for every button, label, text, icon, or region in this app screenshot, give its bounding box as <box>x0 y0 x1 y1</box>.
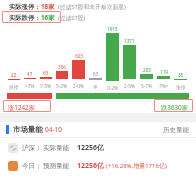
staticText: 203 <box>143 67 151 73</box>
staticText: 1371 <box>124 38 135 44</box>
staticText: 7-5% <box>40 83 52 90</box>
staticText: 119 <box>160 69 168 75</box>
staticText: 历史量能 <box>163 126 189 134</box>
staticText: 涨停 <box>176 84 186 90</box>
staticText: 实际量能 <box>43 144 69 152</box>
staticText: 12256亿 <box>77 143 105 153</box>
staticText: 35 <box>178 72 184 78</box>
staticText: 预测量能 <box>43 162 69 170</box>
staticText: (过滤ST股和未开板次新股) <box>58 3 126 11</box>
button[interactable]: 历史量能 <box>163 126 189 134</box>
staticText: 跌停 <box>9 84 19 90</box>
staticText: 实际跌停： <box>9 14 41 22</box>
staticText: 今日 <box>22 162 35 170</box>
staticText: 沪深 <box>22 144 35 152</box>
staticText: 2-5% <box>124 83 136 90</box>
staticText: | <box>37 162 41 170</box>
staticText: 实际涨停： <box>9 3 41 11</box>
staticText: (过滤ST股) <box>58 14 86 22</box>
staticText: 跌3630家 <box>161 103 189 112</box>
button[interactable]: 市场量能 <box>13 125 62 134</box>
staticText: 603 <box>75 53 83 59</box>
staticText: (+16.28%,增量1716亿) <box>106 162 167 170</box>
staticText: | <box>37 144 41 152</box>
staticText: 16家 <box>41 13 55 22</box>
staticText: 0-2% <box>107 85 119 90</box>
staticText: 平 <box>93 84 98 90</box>
staticText: 12256亿 <box>77 161 105 171</box>
staticText: 306 <box>58 64 66 70</box>
staticText: >7% <box>25 83 35 90</box>
staticText: 2-0% <box>73 83 85 90</box>
staticText: 涨1242家 <box>8 103 36 112</box>
staticText: 5-2% <box>56 83 68 90</box>
staticText: 7%< <box>159 83 169 90</box>
staticText: 63 <box>93 71 99 77</box>
staticText: 18家 <box>41 2 55 11</box>
button[interactable]: 今日 <box>0 160 196 171</box>
staticText: 47 <box>27 71 33 77</box>
staticText: 市场量能 <box>13 125 43 134</box>
staticText: 22 <box>11 72 17 78</box>
button[interactable]: 沪深 <box>0 142 196 153</box>
staticText: 65 <box>43 70 49 76</box>
staticText: 5-7% <box>141 83 153 90</box>
staticText: 04-10 <box>45 125 62 134</box>
staticText: 1915 <box>107 26 118 32</box>
